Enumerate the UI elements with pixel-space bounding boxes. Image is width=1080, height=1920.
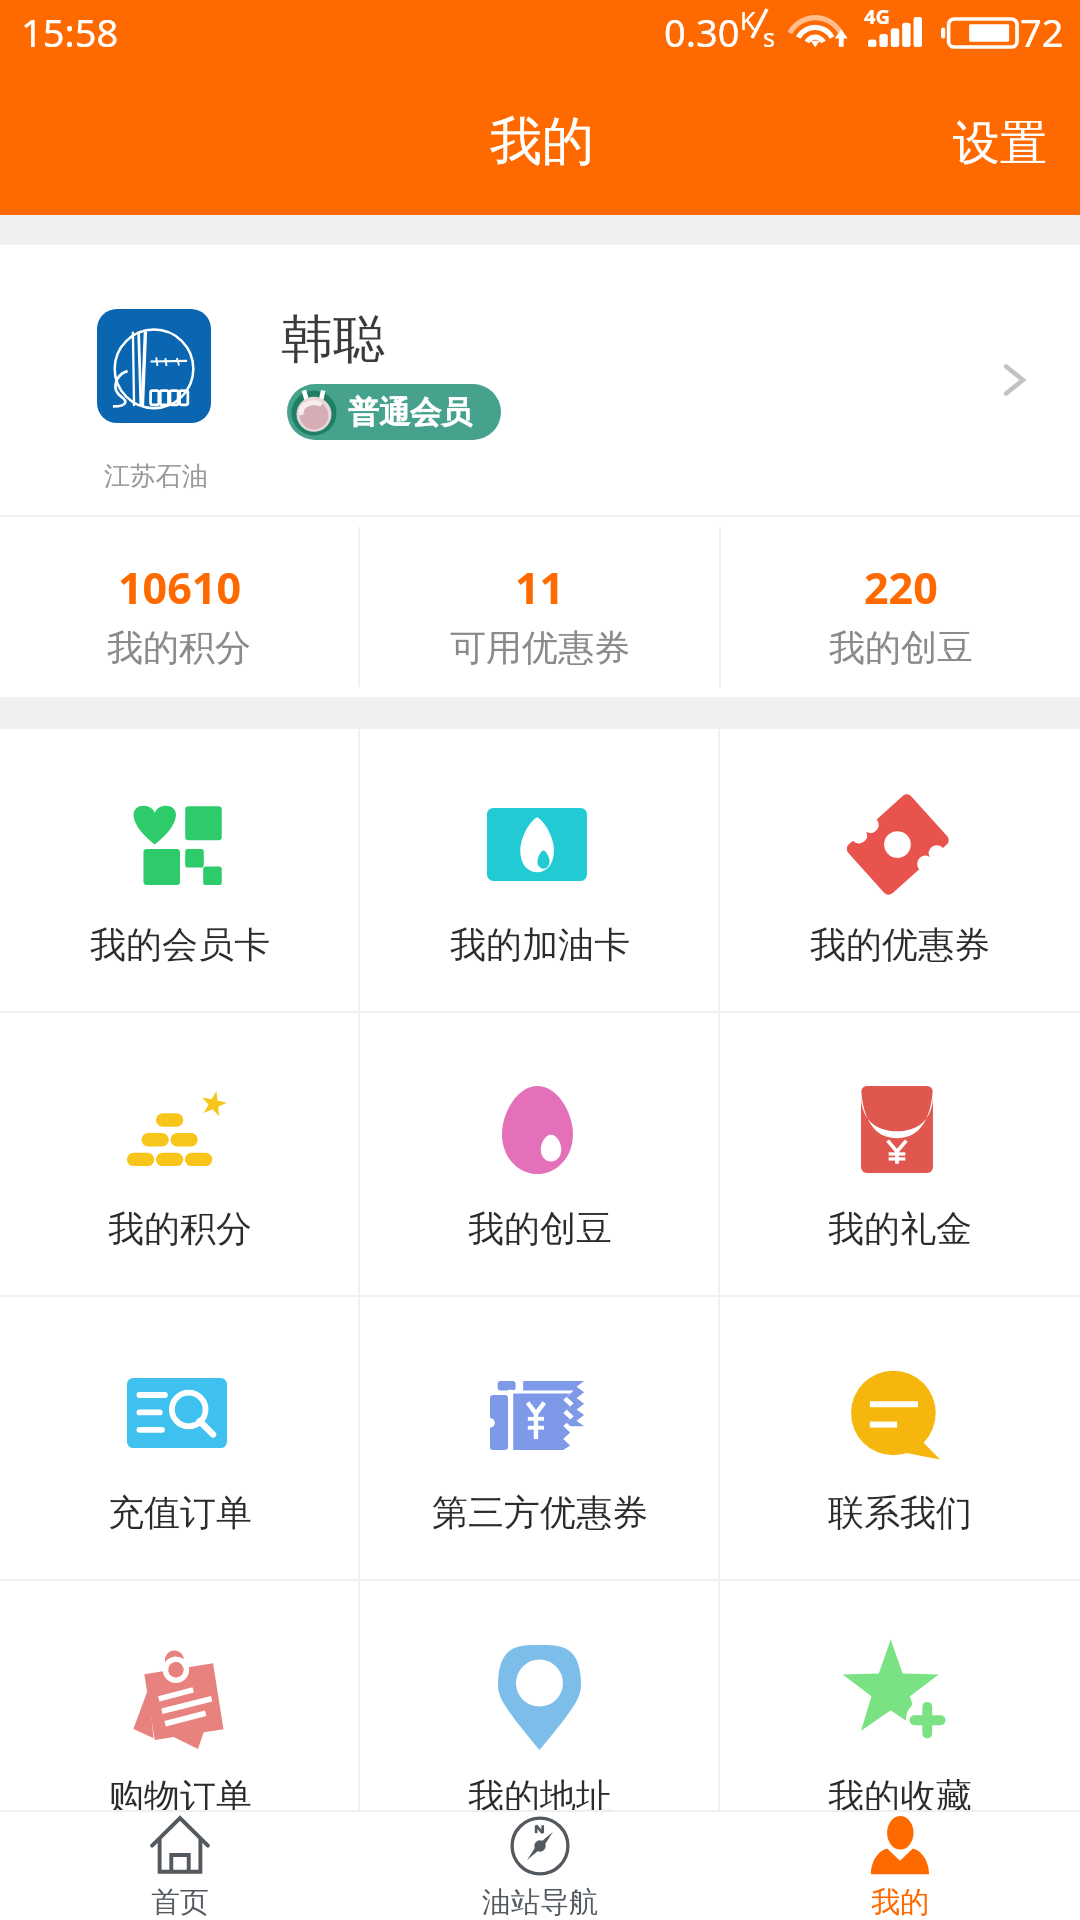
staticText: 0.30 bbox=[664, 6, 740, 58]
staticText: 可用优惠券 bbox=[450, 625, 630, 670]
staticText: 江苏石油 bbox=[104, 460, 208, 493]
button[interactable]: 我的礼金 bbox=[720, 1013, 1080, 1295]
button[interactable]: 我的收藏 bbox=[720, 1581, 1080, 1863]
button[interactable]: 我的地址 bbox=[360, 1581, 720, 1863]
button[interactable]: 首页 bbox=[0, 1812, 360, 1920]
staticText: 设置 bbox=[953, 114, 1047, 173]
button[interactable]: 第三方优惠券 bbox=[360, 1297, 720, 1579]
staticText: 15:58 bbox=[21, 6, 119, 58]
staticText: 联系我们 bbox=[828, 1490, 972, 1535]
button[interactable]: 我的会员卡 bbox=[0, 729, 360, 1011]
button[interactable]: 油站导航 bbox=[360, 1812, 720, 1920]
staticText: 我的创豆 bbox=[829, 625, 973, 670]
staticText: 购物订单 bbox=[108, 1774, 252, 1819]
staticText: 我的积分 bbox=[107, 625, 251, 670]
button[interactable]: 220 bbox=[721, 517, 1080, 697]
button[interactable]: 我的 bbox=[720, 1812, 1080, 1920]
button[interactable]: 联系我们 bbox=[720, 1297, 1080, 1579]
staticText: 我的优惠券 bbox=[810, 922, 990, 967]
button[interactable]: 江苏石油 bbox=[0, 245, 1080, 515]
staticText: 韩聪 bbox=[281, 307, 385, 373]
button[interactable]: 查看个人资料 bbox=[988, 355, 1038, 405]
staticText: 我的 bbox=[871, 1884, 929, 1920]
staticText: 充值订单 bbox=[108, 1490, 252, 1535]
staticText: 我的积分 bbox=[108, 1206, 252, 1251]
staticText: K bbox=[740, 3, 756, 37]
staticText: 我的地址 bbox=[468, 1774, 612, 1819]
button[interactable]: 购物订单 bbox=[0, 1581, 360, 1863]
staticText: 普通会员 bbox=[348, 393, 472, 432]
staticText: 220 bbox=[864, 558, 938, 617]
staticText: 我的礼金 bbox=[828, 1206, 972, 1251]
button[interactable]: 设置 bbox=[920, 90, 1080, 197]
staticText: 72 bbox=[1020, 6, 1064, 58]
staticText: 我的创豆 bbox=[468, 1206, 612, 1251]
button[interactable]: 我的积分 bbox=[0, 1013, 360, 1295]
staticText: 4G bbox=[864, 3, 890, 30]
staticText: 首页 bbox=[151, 1884, 209, 1920]
staticText: 第三方优惠券 bbox=[432, 1490, 648, 1535]
staticText: s bbox=[763, 20, 775, 54]
button[interactable]: 10610 bbox=[0, 517, 358, 697]
button[interactable]: 充值订单 bbox=[0, 1297, 360, 1579]
button[interactable]: 11 bbox=[360, 517, 719, 697]
button[interactable]: 我的创豆 bbox=[360, 1013, 720, 1295]
button[interactable]: 我的加油卡 bbox=[360, 729, 720, 1011]
button[interactable]: 我的优惠券 bbox=[720, 729, 1080, 1011]
staticText: 我的加油卡 bbox=[450, 922, 630, 967]
staticText: 我的收藏 bbox=[828, 1774, 972, 1819]
staticText: 11 bbox=[515, 558, 565, 617]
staticText: 10610 bbox=[118, 558, 241, 617]
staticText: 我的会员卡 bbox=[90, 922, 270, 967]
staticText: 我的 bbox=[490, 109, 594, 175]
staticText: 油站导航 bbox=[482, 1884, 598, 1920]
